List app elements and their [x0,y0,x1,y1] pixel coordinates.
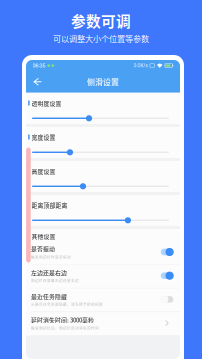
staticText: 触发侧边栏后，侧边栏自动消失的时间 [31,325,99,330]
staticText: 0.0K/s [133,63,147,68]
staticText: 是否振动 [31,244,55,253]
button[interactable]: 是否振动 [26,241,180,265]
staticText: 可以调整大小个位置等参数 [53,33,149,44]
staticText: 宽度设置 [32,133,56,141]
staticText: 触发侧边栏时是否振动 [31,254,71,259]
staticText: 距离顶部距离 [32,201,68,209]
staticText: 06:35 [32,63,45,69]
staticText: 从最近任务界面隐藏，请先授予相关权限 [31,302,103,307]
staticText: 高度设置 [32,167,56,175]
button[interactable]: 最近任务隐藏 [26,288,180,312]
staticText: 其他设置 [32,232,56,240]
staticText: 左边还是右边 [31,268,67,277]
staticText: 透明度设置 [32,99,62,107]
staticText: 延时消失时间: 3000毫秒 [31,316,94,324]
button[interactable]: Back [29,74,46,90]
button[interactable]: 左边还是右边 [26,265,180,288]
staticText: 侧边栏在屏幕左边还是右边 [31,278,79,283]
button[interactable]: 延时消失时间: 3000毫秒 [26,312,180,336]
staticText: 侧滑设置 [87,76,119,88]
staticText: 最近任务隐藏 [31,292,67,300]
staticText: 参数可调 [71,10,131,31]
